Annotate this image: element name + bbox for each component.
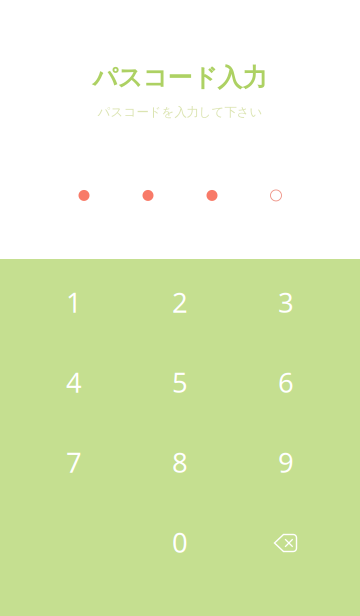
button[interactable]: 2 (127, 262, 233, 342)
button[interactable]: 0 (127, 502, 233, 582)
staticText: 6 (278, 363, 294, 401)
button[interactable]: 7 (21, 422, 127, 502)
button[interactable]: 9 (233, 422, 339, 502)
staticText: 8 (172, 443, 188, 481)
staticText: 3 (278, 283, 294, 321)
staticText: 4 (66, 363, 82, 401)
button[interactable]: 5 (127, 342, 233, 422)
staticText: パスコード入力 (92, 62, 267, 93)
button[interactable]: Delete (233, 502, 339, 582)
staticText: 9 (278, 443, 294, 481)
button[interactable]: 1 (21, 262, 127, 342)
button[interactable]: 8 (127, 422, 233, 502)
staticText: 0 (172, 523, 188, 561)
staticText: 1 (66, 283, 82, 321)
staticText: 7 (66, 443, 82, 481)
staticText: 2 (172, 283, 188, 321)
staticText: パスコードを入力して下さい (97, 104, 262, 120)
button[interactable]: 3 (233, 262, 339, 342)
button[interactable]: 4 (21, 342, 127, 422)
staticText: 5 (172, 363, 188, 401)
button[interactable]: 6 (233, 342, 339, 422)
